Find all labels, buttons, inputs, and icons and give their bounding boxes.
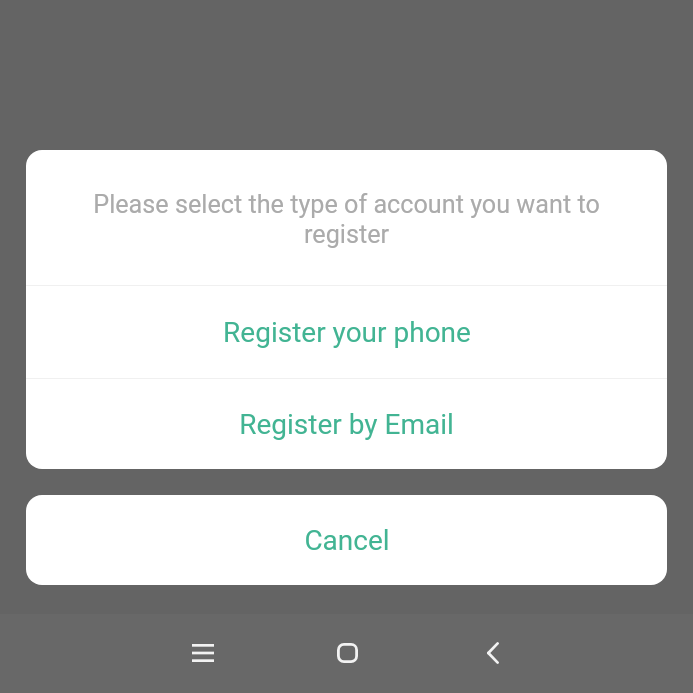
button[interactable]: Register your phone — [26, 286, 667, 378]
staticText: Please select the type of account you wa… — [54, 190, 639, 250]
button[interactable]: Home — [319, 629, 375, 677]
button[interactable]: Register by Email — [26, 379, 667, 469]
staticText: Register your phone — [223, 316, 471, 349]
button[interactable]: Cancel — [26, 495, 667, 585]
button[interactable]: Menu — [175, 629, 231, 677]
staticText: Register by Email — [239, 408, 454, 441]
button[interactable]: Back — [465, 629, 521, 677]
staticText: Cancel — [304, 524, 390, 557]
